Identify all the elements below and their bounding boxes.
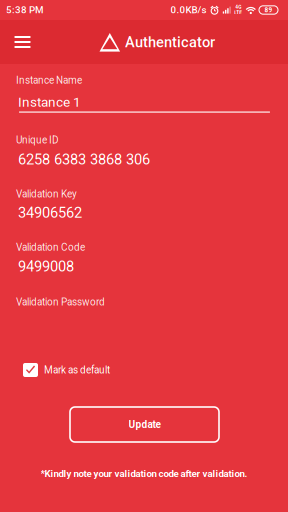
staticText: 89 [264,6,272,14]
staticText: 4G [235,4,241,10]
staticText: Instance Name [16,74,82,86]
button[interactable]: Mark as default [23,363,110,377]
staticText: Update [128,419,160,430]
staticText: 5:38 PM [6,4,44,16]
button[interactable]: Update [70,407,219,442]
staticText: Instance 1 [18,94,81,110]
staticText: Validation Key [16,188,77,200]
staticText: Mark as default [44,364,110,376]
staticText: 34906562 [18,204,82,221]
staticText: Unique ID [16,134,59,146]
staticText: 6258 6383 3868 306 [18,151,150,168]
staticText: 0.0KB/s [170,4,206,16]
staticText: *Kindly note your validation code after … [40,468,247,479]
staticText: LTE [234,10,242,16]
staticText: Validation Password [16,296,105,308]
staticText: 9499008 [18,258,74,275]
button[interactable]: Menu [0,20,45,64]
staticText: Validation Code [16,241,85,253]
staticText: Authenticator [125,34,215,51]
